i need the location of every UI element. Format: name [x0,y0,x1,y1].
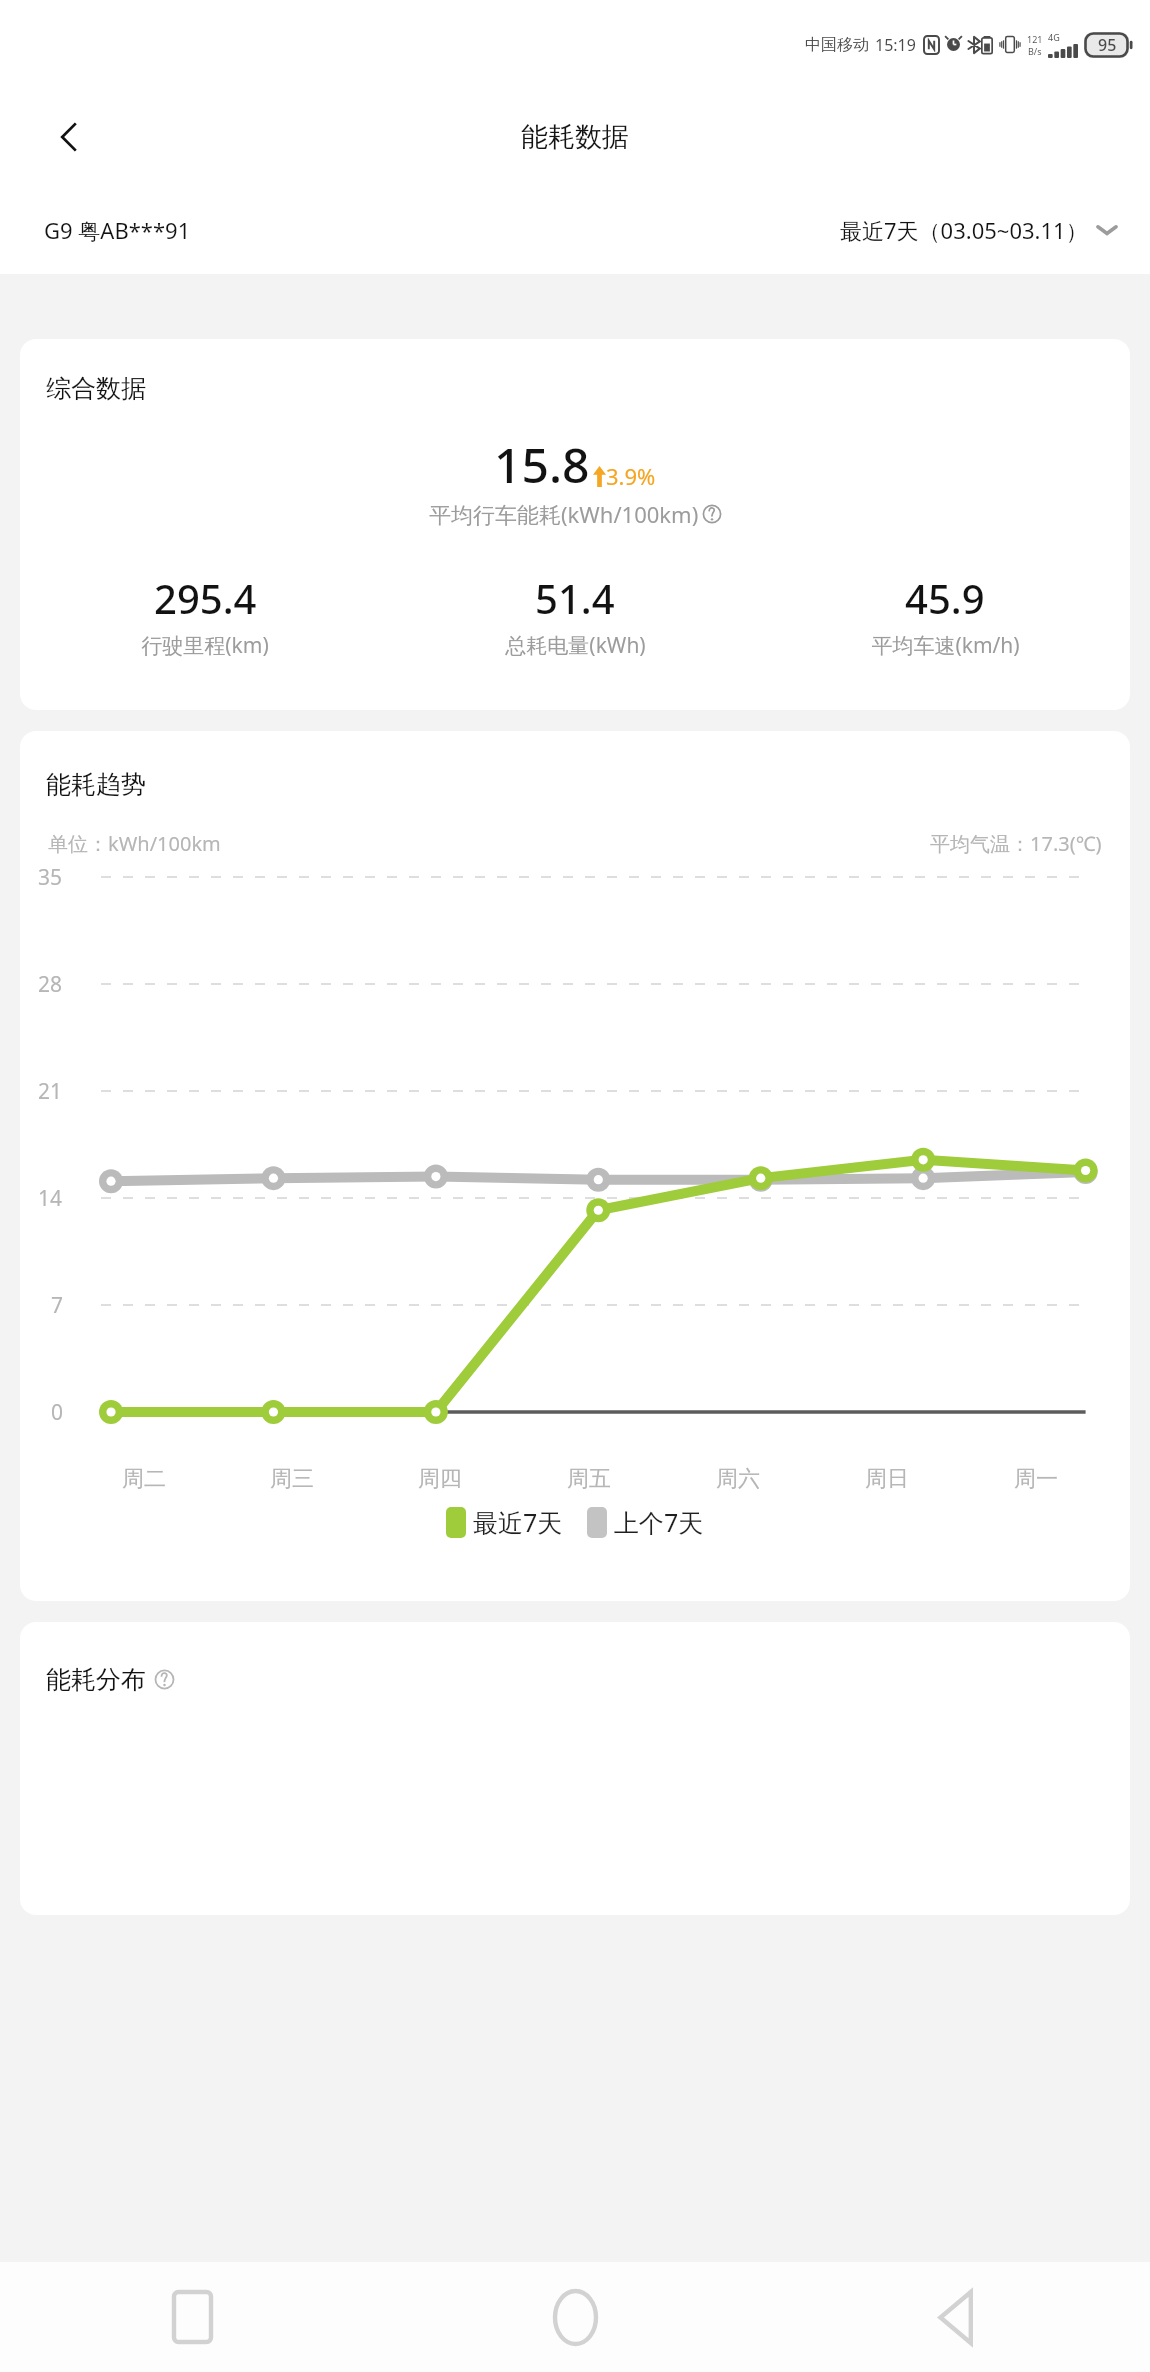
staticText: B/s [1028,45,1042,57]
button[interactable]: 上个7天 [587,1505,704,1539]
staticText: 14 [38,1184,63,1213]
staticText: 周五 [567,1465,611,1493]
staticText: 周二 [122,1465,166,1493]
button[interactable]: Home [384,2262,767,2372]
button[interactable]: 最近7天 [446,1505,563,1539]
staticText: 0 [51,1398,64,1427]
staticText: 15.8 [494,432,590,497]
staticText: 45.9 [905,571,985,625]
staticText: 平均行车能耗(kWh/100km) [429,499,699,529]
staticText: 最近7天（03.05~03.11） [840,215,1088,245]
staticText: 能耗数据 [521,120,629,154]
staticText: 平均车速(km/h) [871,631,1020,660]
button[interactable]: Back [767,2262,1150,2372]
staticText: 行驶里程(km) [141,631,269,660]
staticText: 能耗分布 [46,1664,146,1695]
staticText: 35 [38,863,63,892]
staticText: 平均气温：17.3(℃) [930,830,1102,857]
staticText: 周四 [418,1465,462,1493]
staticText: G9 粤AB***91 [44,215,191,245]
staticText: 3.9% [606,461,656,491]
staticText: 4G [1048,31,1060,43]
staticText: 周六 [716,1465,760,1493]
staticText: 最近7天 [473,1505,563,1539]
staticText: 总耗电量(kWh) [505,631,646,660]
staticText: 28 [38,970,63,999]
staticText: 周一 [1014,1465,1058,1493]
button[interactable]: 最近7天（03.05~03.11） [832,207,1128,253]
staticText: 能耗趋势 [46,769,146,800]
staticText: 单位：kWh/100km [48,830,221,857]
staticText: 综合数据 [46,373,146,404]
staticText: 上个7天 [614,1505,704,1539]
button[interactable]: Back [38,106,100,168]
staticText: 51.4 [535,571,615,625]
staticText: 95 [1098,34,1117,56]
staticText: 中国移动 [805,35,869,55]
staticText: 21 [38,1077,63,1106]
staticText: 周三 [270,1465,314,1493]
button[interactable]: Recents [0,2262,384,2372]
staticText: 295.4 [154,571,257,625]
staticText: 7 [51,1291,64,1320]
staticText: 周日 [865,1465,909,1493]
staticText: 15:19 [875,34,916,56]
staticText: 121 [1027,33,1043,45]
